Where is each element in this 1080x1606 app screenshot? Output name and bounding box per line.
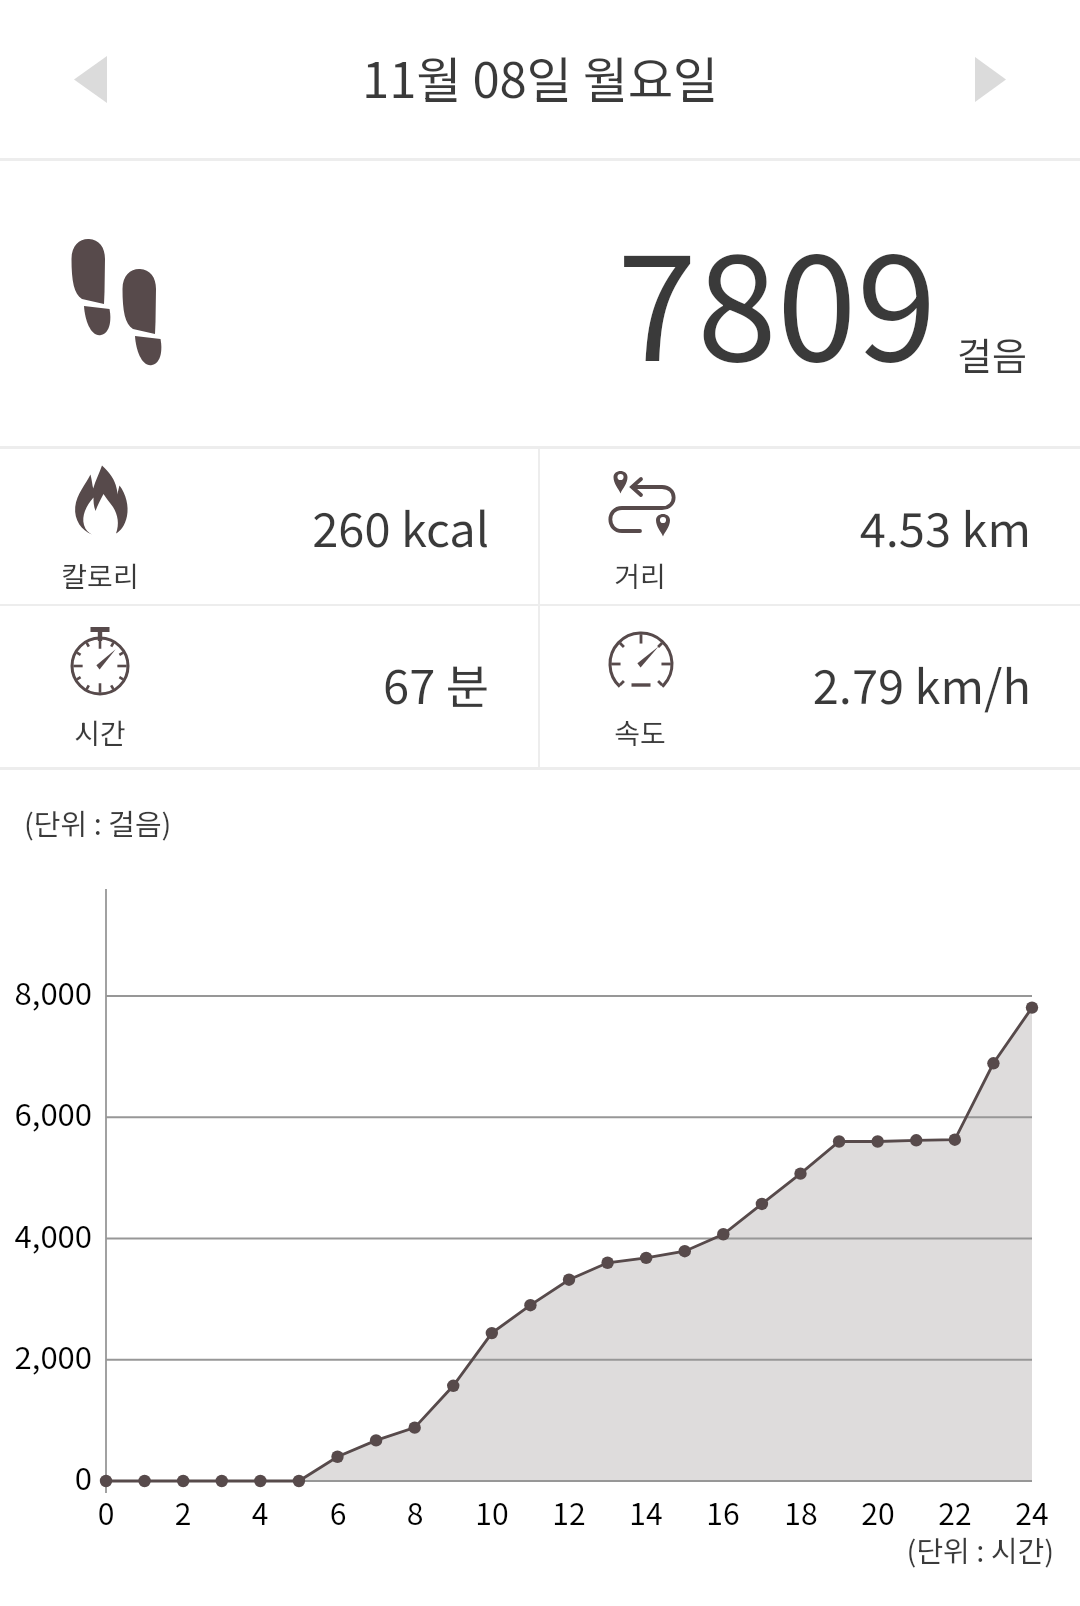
- staticText: (단위 : 시간): [0, 1528, 1054, 1570]
- button[interactable]: 칼로리: [0, 449, 538, 604]
- staticText: 속도: [560, 712, 720, 753]
- staticText: 4: [220, 1490, 300, 1533]
- staticText: 시간: [20, 712, 180, 753]
- button[interactable]: 시간: [0, 606, 538, 767]
- staticText: (단위 : 걸음): [24, 801, 172, 843]
- staticText: 18: [761, 1490, 841, 1533]
- staticText: 22: [915, 1490, 995, 1533]
- staticText: 8: [375, 1490, 455, 1533]
- staticText: 260 kcal: [0, 492, 489, 560]
- staticText: 67 분: [0, 649, 489, 717]
- staticText: 칼로리: [20, 555, 180, 596]
- staticText: 거리: [560, 555, 720, 596]
- staticText: 16: [683, 1490, 763, 1533]
- staticText: 0: [0, 1454, 92, 1499]
- staticText: 8,000: [0, 969, 92, 1014]
- staticText: 14: [606, 1490, 686, 1533]
- staticText: 6: [298, 1490, 378, 1533]
- staticText: 0: [66, 1490, 146, 1533]
- button[interactable]: Previous day: [24, 29, 156, 129]
- staticText: 2: [143, 1490, 223, 1533]
- button[interactable]: 속도: [540, 606, 1080, 767]
- staticText: 12: [529, 1490, 609, 1533]
- staticText: 7809: [617, 194, 937, 403]
- button[interactable]: 거리: [540, 449, 1080, 604]
- staticText: 11월 08일 월요일: [0, 41, 1080, 112]
- staticText: 24: [992, 1490, 1072, 1533]
- button[interactable]: Next day: [924, 29, 1056, 129]
- staticText: 2.79 km/h: [540, 649, 1031, 717]
- staticText: 6,000: [0, 1090, 92, 1135]
- staticText: 20: [838, 1490, 918, 1533]
- staticText: 4.53 km: [540, 492, 1031, 560]
- staticText: 2,000: [0, 1333, 92, 1378]
- staticText: 10: [452, 1490, 532, 1533]
- staticText: 걸음: [957, 326, 1027, 381]
- staticText: 4,000: [0, 1212, 92, 1257]
